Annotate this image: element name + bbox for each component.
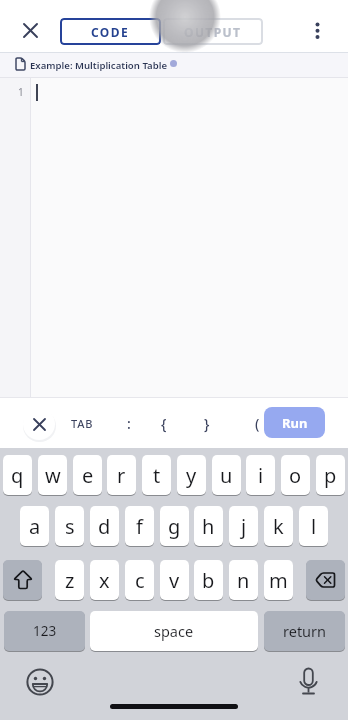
button[interactable]: u — [212, 455, 241, 495]
staticText: c — [135, 567, 145, 594]
staticText: k — [273, 513, 284, 540]
button[interactable] — [310, 20, 325, 42]
staticText: p — [324, 462, 337, 489]
staticText: m — [269, 567, 288, 594]
staticText: s — [65, 513, 75, 540]
staticText: j — [241, 513, 247, 540]
staticText: e — [82, 462, 94, 489]
staticText: TAB — [71, 416, 94, 431]
button[interactable]: ( — [247, 398, 267, 448]
button[interactable]: return — [264, 611, 345, 651]
button[interactable]: } — [197, 398, 217, 448]
staticText: z — [65, 567, 75, 594]
staticText: d — [98, 513, 111, 540]
button[interactable]: m — [264, 560, 293, 600]
button[interactable]: x — [90, 560, 119, 600]
staticText: q — [11, 462, 24, 489]
button[interactable]: k — [264, 506, 293, 546]
button[interactable]: j — [229, 506, 258, 546]
staticText: f — [136, 513, 143, 540]
button[interactable] — [23, 23, 38, 38]
button[interactable] — [26, 668, 54, 696]
staticText: y — [186, 462, 197, 489]
staticText: : — [127, 414, 131, 433]
staticText: u — [220, 462, 233, 489]
button[interactable]: f — [125, 506, 154, 546]
staticText: 1 — [18, 85, 24, 99]
button[interactable]: w — [38, 455, 67, 495]
button[interactable] — [297, 666, 320, 696]
button[interactable]: i — [246, 455, 275, 495]
button[interactable]: p — [316, 455, 345, 495]
button[interactable]: n — [229, 560, 258, 600]
button[interactable]: CODE — [60, 18, 161, 45]
staticText: h — [202, 513, 215, 540]
button[interactable]: { — [154, 398, 174, 448]
staticText: a — [29, 513, 41, 540]
button[interactable]: h — [194, 506, 223, 546]
staticText: Run — [282, 414, 308, 432]
button[interactable]: c — [125, 560, 154, 600]
staticText: Example: Multiplication Table — [30, 59, 168, 72]
button[interactable]: TAB — [64, 398, 100, 448]
staticText: { — [161, 414, 167, 433]
button[interactable] — [306, 560, 345, 600]
button[interactable]: y — [177, 455, 206, 495]
button[interactable]: e — [73, 455, 102, 495]
staticText: i — [258, 462, 264, 489]
staticText: b — [202, 567, 215, 594]
staticText: CODE — [91, 24, 130, 40]
staticText: w — [45, 462, 61, 489]
button[interactable]: o — [281, 455, 310, 495]
button[interactable]: 123 — [4, 611, 85, 651]
staticText: 123 — [33, 622, 57, 640]
button[interactable]: q — [3, 455, 32, 495]
button[interactable]: d — [90, 506, 119, 546]
staticText: v — [169, 567, 180, 594]
staticText: r — [117, 462, 126, 489]
staticText: return — [283, 621, 327, 641]
staticText: o — [289, 462, 302, 489]
staticText: g — [168, 513, 181, 540]
button[interactable]: s — [55, 506, 84, 546]
button[interactable]: space — [90, 611, 258, 651]
button[interactable] — [3, 560, 42, 600]
staticText: x — [99, 567, 110, 594]
button[interactable]: : — [119, 398, 139, 448]
staticText: OUTPUT — [184, 24, 242, 40]
staticText: space — [154, 621, 194, 641]
button[interactable]: t — [142, 455, 171, 495]
button[interactable]: r — [107, 455, 136, 495]
button[interactable]: v — [160, 560, 189, 600]
button[interactable]: b — [194, 560, 223, 600]
staticText: ( — [255, 414, 260, 433]
button[interactable]: Run — [264, 407, 325, 438]
button[interactable]: z — [55, 560, 84, 600]
staticText: n — [237, 567, 250, 594]
staticText: t — [153, 462, 161, 489]
button[interactable]: a — [20, 506, 49, 546]
button[interactable]: g — [160, 506, 189, 546]
button[interactable]: OUTPUT — [163, 18, 263, 45]
button[interactable] — [23, 408, 55, 440]
staticText: l — [311, 513, 317, 540]
staticText: } — [204, 414, 210, 433]
button[interactable]: l — [299, 506, 328, 546]
